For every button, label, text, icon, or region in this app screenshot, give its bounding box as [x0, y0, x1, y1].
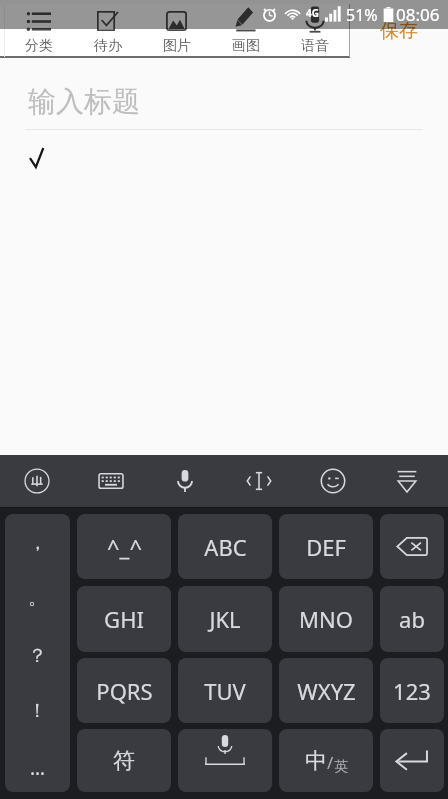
button[interactable]: GHI — [77, 586, 171, 652]
button[interactable]: ab — [380, 586, 444, 652]
staticText: 08:06 — [396, 3, 440, 26]
button[interactable]: TUV — [178, 658, 272, 723]
button[interactable]: Emoji — [296, 455, 370, 507]
staticText: ， — [28, 531, 47, 555]
button[interactable]: Cursor — [222, 455, 296, 507]
button[interactable]: PQRS — [77, 658, 171, 723]
button[interactable] — [178, 729, 272, 792]
button[interactable] — [380, 514, 444, 579]
staticText: 123 — [393, 676, 431, 706]
button[interactable]: ， — [5, 514, 70, 792]
staticText: 图片 — [163, 37, 191, 55]
staticText: 4G — [306, 6, 319, 20]
staticText: PQRS — [96, 676, 153, 706]
button[interactable]: Keyboard layout — [74, 455, 148, 507]
button[interactable]: 待办 — [73, 5, 142, 57]
staticText: / — [327, 751, 334, 774]
button[interactable] — [380, 729, 444, 792]
staticText: ！ — [28, 699, 47, 723]
staticText: ABC — [204, 532, 247, 562]
staticText: ？ — [28, 644, 47, 668]
staticText: 保存 — [380, 19, 418, 43]
staticText: 输入标题 — [28, 84, 140, 119]
staticText: WXYZ — [297, 676, 356, 706]
button[interactable]: 123 — [380, 658, 444, 723]
staticText: 符 — [113, 747, 135, 775]
button[interactable]: ABC — [178, 514, 272, 579]
button[interactable]: WXYZ — [279, 658, 373, 723]
button[interactable]: DEF — [279, 514, 373, 579]
button[interactable]: 符 — [77, 729, 171, 792]
staticText: 51% — [346, 4, 378, 26]
staticText: 分类 — [25, 37, 53, 55]
staticText: 语音 — [301, 37, 329, 55]
button[interactable]: Voice input — [148, 455, 222, 507]
button[interactable]: JKL — [178, 586, 272, 652]
button[interactable]: 分类 — [5, 5, 73, 57]
button[interactable]: 保存 — [368, 9, 430, 52]
button[interactable]: IME — [0, 455, 74, 507]
staticText: ^_^ — [107, 532, 142, 562]
staticText: 待办 — [94, 37, 122, 55]
staticText: ab — [399, 604, 425, 634]
staticText: 画图 — [232, 37, 260, 55]
button[interactable]: 图片 — [142, 5, 211, 57]
staticText: GHI — [104, 604, 144, 634]
button[interactable]: 语音 — [280, 5, 349, 57]
staticText: 。 — [28, 586, 47, 610]
button[interactable]: MNO — [279, 586, 373, 652]
button[interactable]: 画图 — [211, 5, 280, 57]
staticText: JKL — [209, 604, 241, 634]
staticText: 英 — [334, 758, 348, 776]
button[interactable]: ^_^ — [77, 514, 171, 579]
button[interactable]: 中 — [279, 729, 373, 792]
staticText: … — [30, 755, 46, 779]
staticText: TUV — [204, 676, 246, 706]
button[interactable]: Hide keyboard — [370, 455, 444, 507]
staticText: MNO — [299, 604, 353, 634]
staticText: 中 — [305, 747, 327, 775]
staticText: DEF — [306, 532, 346, 562]
